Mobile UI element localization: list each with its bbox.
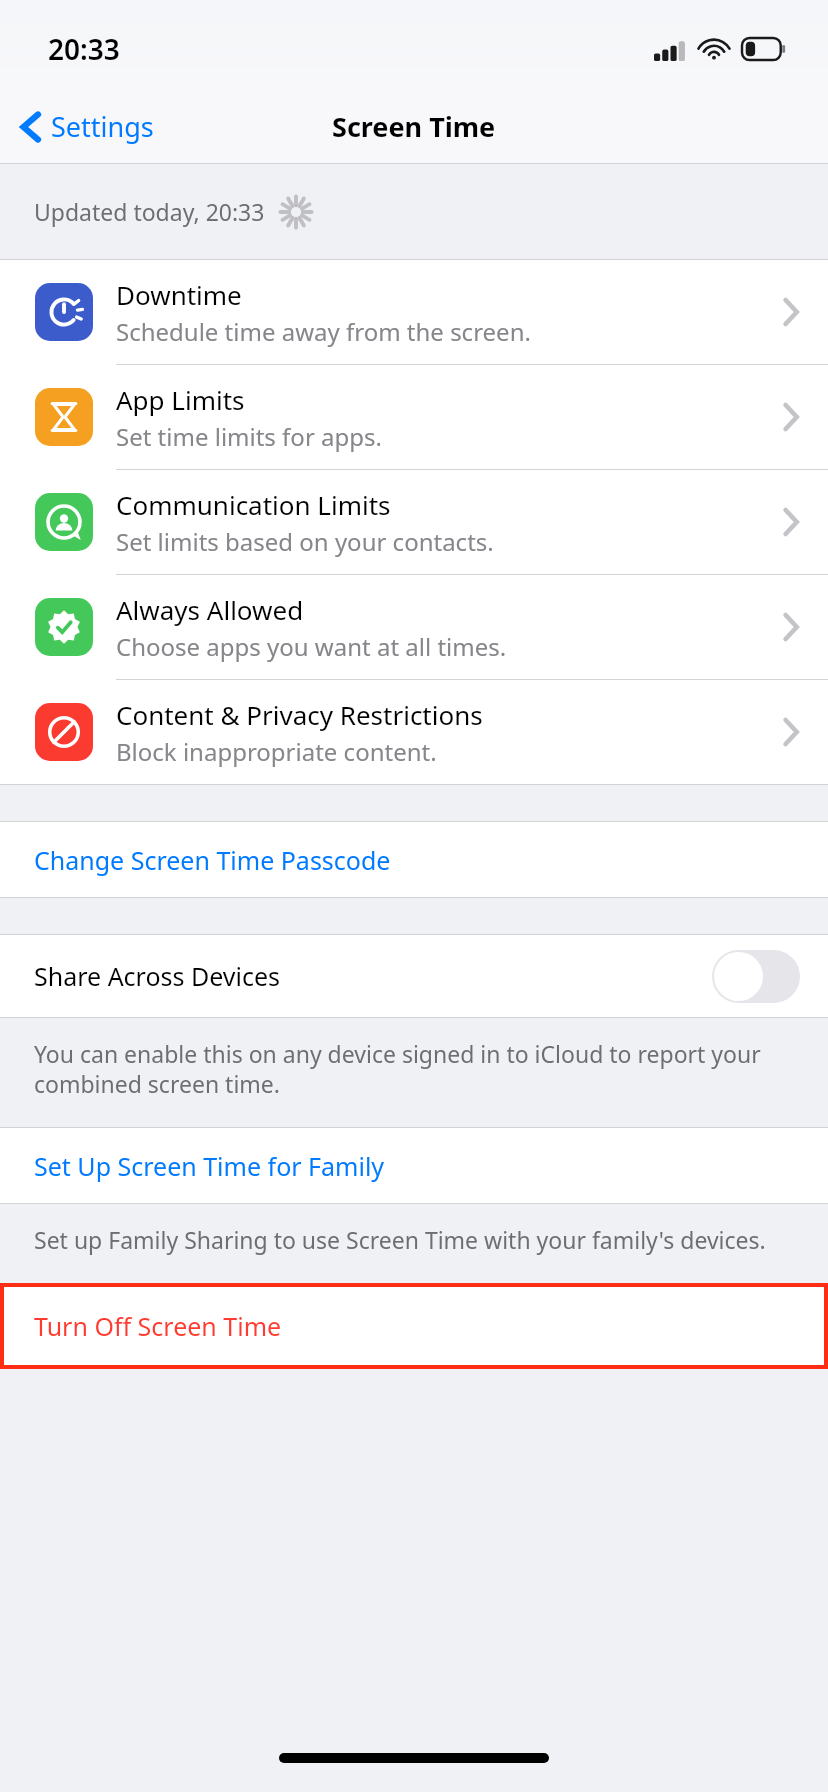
staticText: Turn Off Screen Time: [34, 1309, 282, 1343]
staticText: You can enable this on any device signed…: [34, 1038, 772, 1099]
staticText: Change Screen Time Passcode: [34, 843, 391, 877]
button[interactable]: App Limits: [0, 365, 828, 470]
staticText: Set up Family Sharing to use Screen Time…: [34, 1224, 766, 1255]
staticText: App Limits: [116, 382, 245, 417]
staticText: Content & Privacy Restrictions: [116, 697, 483, 732]
staticText: Always Allowed: [116, 592, 304, 627]
staticText: Screen Time: [332, 108, 496, 145]
button[interactable]: Always Allowed: [0, 575, 828, 680]
button[interactable]: Change Screen Time Passcode: [0, 822, 828, 897]
staticText: Settings: [51, 108, 154, 145]
staticText: Communication Limits: [116, 487, 391, 522]
staticText: Set limits based on your contacts.: [116, 525, 494, 558]
staticText: Set time limits for apps.: [116, 420, 382, 453]
staticText: Choose apps you want at all times.: [116, 630, 507, 663]
button[interactable]: Downtime: [0, 260, 828, 365]
button[interactable]: Communication Limits: [0, 470, 828, 575]
button[interactable]: Share Across Devices: [0, 935, 828, 1017]
button[interactable]: Share Across Devices toggle: [712, 950, 800, 1003]
staticText: Share Across Devices: [34, 959, 281, 993]
staticText: 20:33: [48, 30, 120, 68]
staticText: Downtime: [116, 277, 242, 312]
button[interactable]: Turn Off Screen Time: [0, 1283, 828, 1369]
staticText: Schedule time away from the screen.: [116, 315, 531, 348]
staticText: Block inappropriate content.: [116, 735, 437, 768]
button[interactable]: Settings: [0, 102, 170, 151]
button[interactable]: Content & Privacy Restrictions: [0, 680, 828, 784]
button[interactable]: Set Up Screen Time for Family: [0, 1128, 828, 1203]
staticText: Updated today, 20:33: [34, 196, 265, 227]
staticText: Set Up Screen Time for Family: [34, 1149, 385, 1183]
